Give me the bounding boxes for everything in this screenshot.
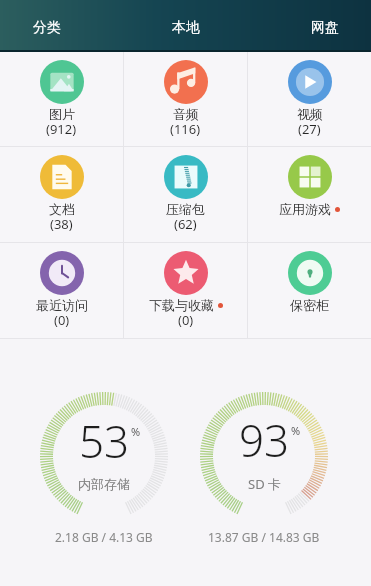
staticText: 内部存储 <box>78 476 130 492</box>
staticText: 53 <box>79 411 130 471</box>
staticText: 93 <box>239 410 290 470</box>
button[interactable]: 保密柜 <box>248 243 371 338</box>
button[interactable]: 最近访问 <box>0 243 123 338</box>
staticText: 音频 <box>173 106 199 122</box>
button[interactable]: 文档 <box>0 147 123 242</box>
staticText: 下载与收藏 <box>149 297 214 313</box>
staticText: % <box>291 423 301 438</box>
staticText: 应用游戏 <box>279 201 331 217</box>
button[interactable]: 视频 <box>248 52 371 146</box>
button[interactable]: 分类 <box>0 4 94 52</box>
staticText: 本地 <box>172 19 200 37</box>
button[interactable]: 本地 <box>94 4 278 52</box>
button[interactable]: 音频 <box>124 52 247 146</box>
staticText: (0) <box>54 311 70 329</box>
button[interactable]: 压缩包 <box>124 147 247 242</box>
staticText: % <box>131 424 141 439</box>
staticText: (0) <box>178 311 194 329</box>
staticText: (62) <box>174 215 197 233</box>
button[interactable]: 图片 <box>0 52 123 146</box>
staticText: 网盘 <box>311 19 339 37</box>
staticText: 图片 <box>49 106 75 122</box>
staticText: 13.87 GB / 14.83 GB <box>208 529 320 545</box>
staticText: 保密柜 <box>290 297 329 313</box>
staticText: (27) <box>298 120 321 138</box>
staticText: 文档 <box>49 201 75 217</box>
staticText: (38) <box>50 215 73 233</box>
button[interactable]: 网盘 <box>278 4 371 52</box>
staticText: (116) <box>170 120 201 138</box>
staticText: 2.18 GB / 4.13 GB <box>55 529 153 545</box>
staticText: 最近访问 <box>36 297 88 313</box>
staticText: SD 卡 <box>248 475 282 493</box>
staticText: 视频 <box>297 106 323 122</box>
button[interactable]: 下载与收藏 <box>124 243 247 338</box>
button[interactable]: 应用游戏 <box>248 147 371 242</box>
staticText: 分类 <box>33 19 61 37</box>
staticText: 压缩包 <box>166 201 205 217</box>
staticText: (912) <box>46 120 77 138</box>
